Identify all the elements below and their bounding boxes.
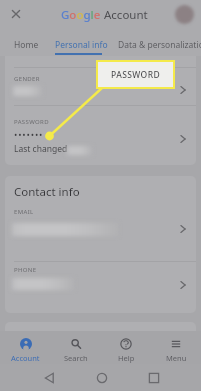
staticText: Account xyxy=(11,353,40,363)
staticText: PASSWORD xyxy=(111,69,161,81)
staticText: PASSWORD xyxy=(14,118,49,126)
staticText: Contact info xyxy=(14,184,80,200)
button[interactable]: Personal info xyxy=(55,39,108,51)
button[interactable]: Account xyxy=(0,331,51,364)
staticText: ••••••• xyxy=(14,128,44,140)
staticText: Help xyxy=(118,353,135,363)
button[interactable]: Home xyxy=(14,39,39,51)
button[interactable] xyxy=(5,262,196,313)
button[interactable] xyxy=(5,106,196,165)
staticText: Data & personalization xyxy=(118,39,201,51)
staticText: Account xyxy=(104,7,148,23)
staticText: GENDER xyxy=(14,75,40,83)
staticText: Search xyxy=(64,353,88,363)
button[interactable]: Help xyxy=(101,331,151,364)
staticText: Home xyxy=(14,39,39,51)
staticText: Personal info xyxy=(55,39,108,51)
staticText: Menu xyxy=(166,353,187,363)
staticText: EMAIL xyxy=(14,208,34,216)
staticText: PHONE xyxy=(14,266,37,274)
button[interactable]: Close xyxy=(7,5,25,23)
staticText: Google xyxy=(61,7,101,23)
button[interactable] xyxy=(5,68,196,105)
button[interactable]: Account avatar xyxy=(175,5,194,24)
button[interactable]: Menu xyxy=(151,331,201,364)
button[interactable] xyxy=(5,204,196,261)
button[interactable]: Data & personalization xyxy=(118,39,201,51)
staticText: Last changed xyxy=(14,143,68,155)
button[interactable]: Search xyxy=(51,331,101,364)
